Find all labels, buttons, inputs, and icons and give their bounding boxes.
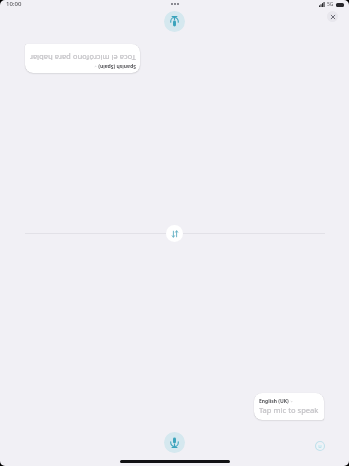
staticText: English (UK)	[259, 398, 289, 405]
staticText: 10:00	[6, 0, 22, 8]
staticText: Tap mic to speak	[259, 405, 319, 415]
button[interactable]: Close	[327, 11, 338, 22]
button[interactable]: English (UK)	[254, 393, 324, 420]
staticText: 5G	[327, 1, 334, 8]
staticText: Toca el micrófono para hablar	[29, 53, 136, 63]
button[interactable]: Keyboard	[315, 441, 325, 451]
button[interactable]: Swap languages	[166, 225, 183, 242]
button[interactable]: Speak Spanish	[164, 11, 185, 32]
button[interactable]: Speak English	[164, 432, 185, 453]
staticText: Spanish (Spain)	[98, 63, 136, 70]
button[interactable]: Spanish (Spain)	[25, 44, 140, 73]
